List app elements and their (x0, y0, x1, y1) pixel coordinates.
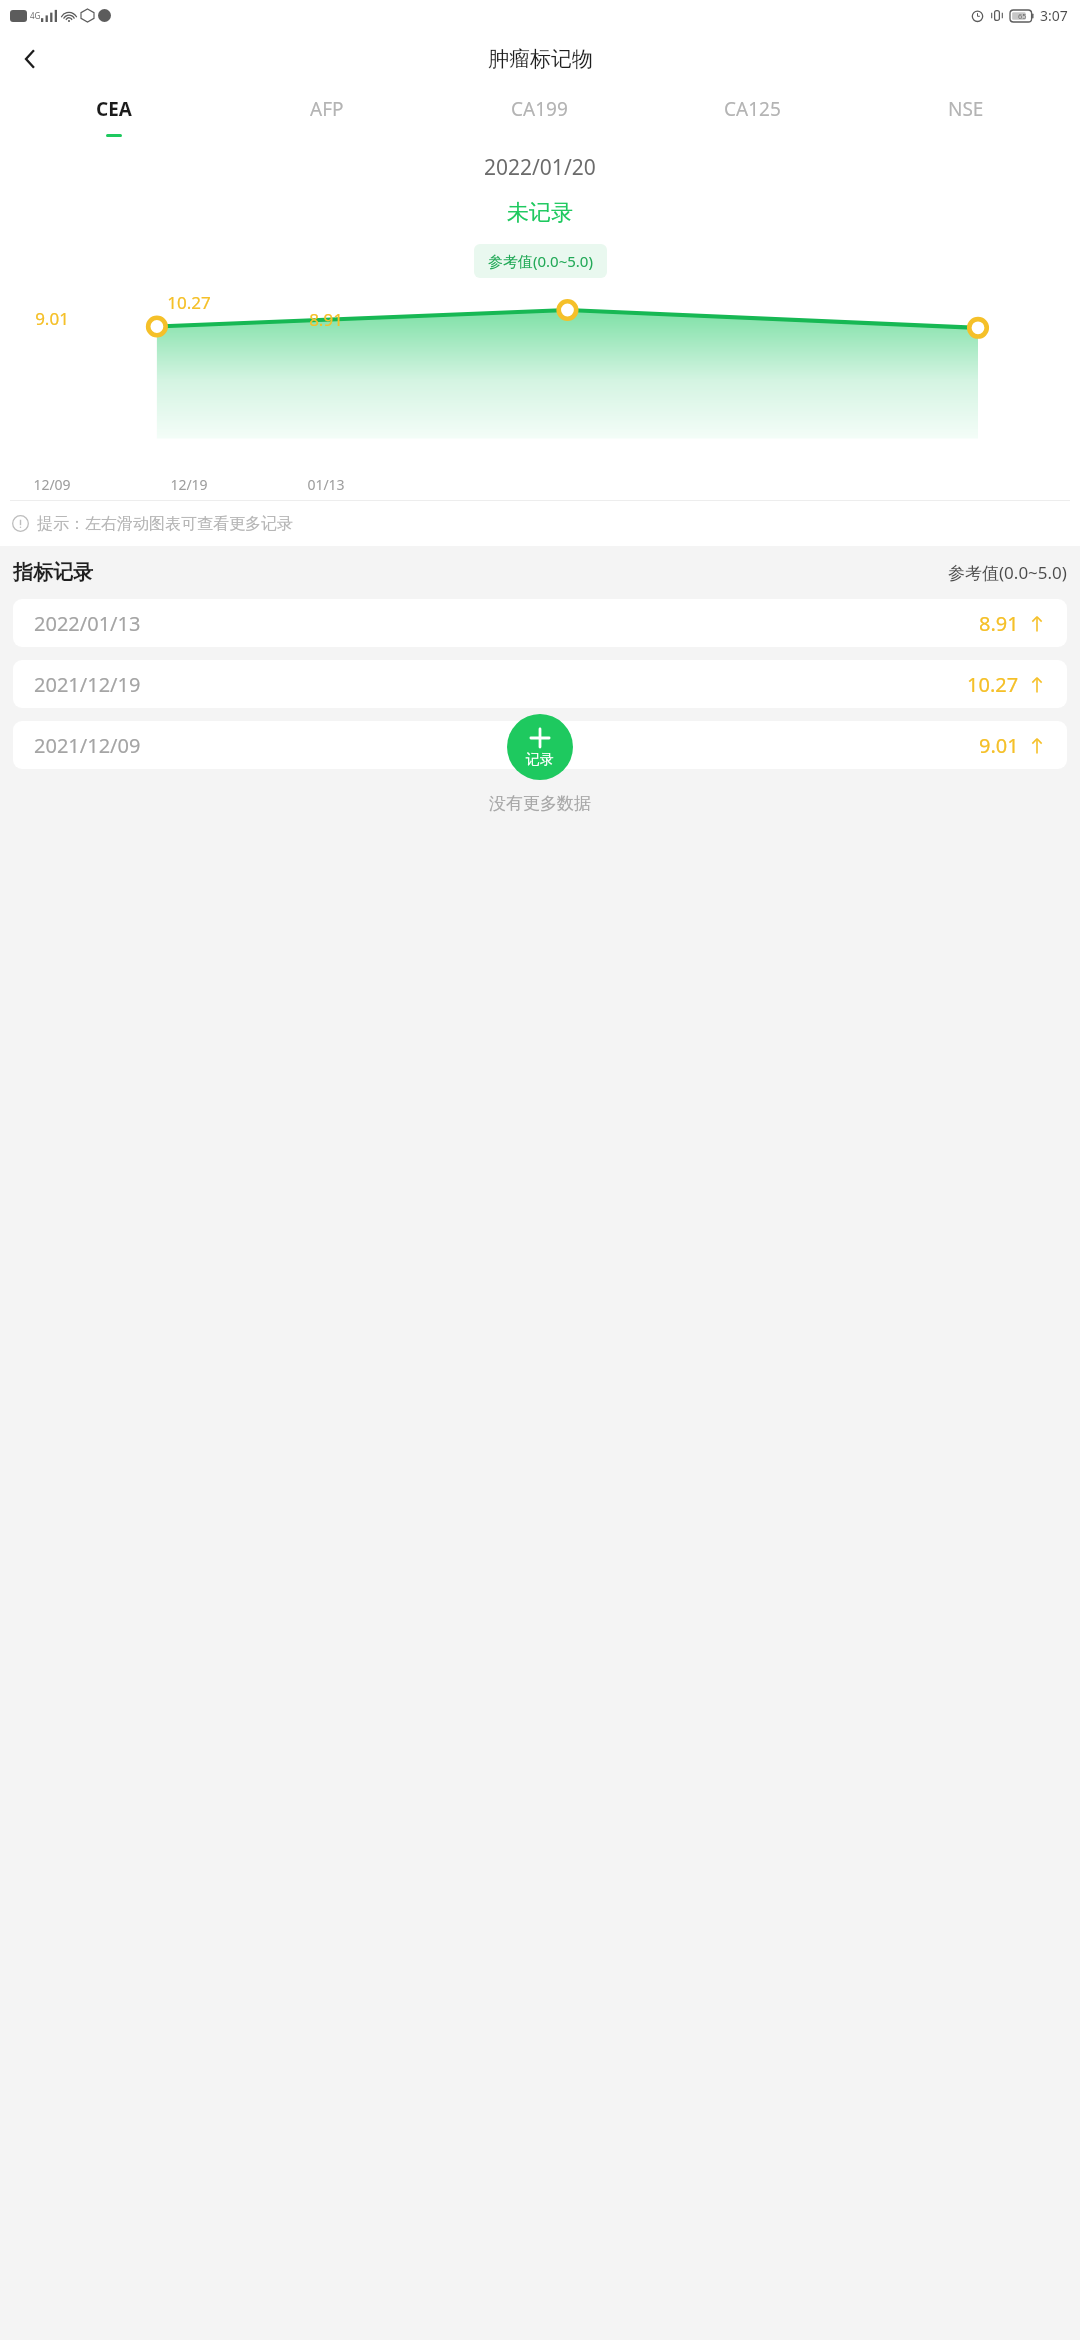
staticText: 2022/01/20 (484, 153, 596, 182)
staticText: 8.91 (296, 308, 356, 331)
staticText: 10.27 (159, 291, 219, 314)
staticText: 12/19 (159, 475, 219, 494)
staticText: 没有更多数据 (0, 793, 1080, 814)
staticText: 参考值(0.0~5.0) (948, 561, 1067, 584)
staticText: CA199 (511, 96, 568, 122)
staticText: 左右滑动图表可查看更多记录 (85, 514, 293, 534)
button[interactable]: NSE (859, 88, 1072, 143)
staticText: 指标记录 (13, 560, 93, 585)
staticText: 2021/12/19 (34, 671, 141, 698)
staticText: 参考值(0.0~5.0) (488, 251, 593, 271)
staticText: 2022/01/13 (34, 610, 141, 637)
button[interactable]: CEA (8, 88, 220, 143)
staticText: CEA (96, 96, 132, 122)
staticText: 未记录 (507, 199, 573, 227)
staticText: 12/09 (22, 475, 82, 494)
button[interactable]: 2021/12/09 (13, 721, 1067, 769)
staticText: 8.91 (979, 610, 1019, 637)
staticText: 肿瘤标记物 (488, 46, 593, 72)
staticText: NSE (948, 96, 984, 122)
staticText: 4G (30, 10, 41, 21)
staticText: CA125 (724, 96, 781, 122)
staticText: 2021/12/09 (34, 732, 141, 759)
button[interactable]: CA125 (646, 88, 859, 143)
staticText: 01/13 (296, 475, 356, 494)
button[interactable]: 2022/01/13 (13, 599, 1067, 647)
staticText: 记录 (526, 751, 554, 769)
staticText: 9.01 (979, 732, 1019, 759)
staticText: 9.01 (22, 307, 82, 330)
button[interactable]: 2021/12/19 (13, 660, 1067, 708)
staticText: 10.27 (967, 671, 1019, 698)
button[interactable]: 记录 (507, 714, 573, 780)
staticText: 65 (1018, 11, 1027, 21)
button[interactable]: Back (6, 35, 54, 83)
staticText: 3:07 (1040, 6, 1068, 25)
staticText: AFP (310, 96, 344, 122)
staticText: 提示： (37, 514, 85, 534)
button[interactable]: CA199 (433, 88, 646, 143)
button[interactable]: AFP (220, 88, 433, 143)
